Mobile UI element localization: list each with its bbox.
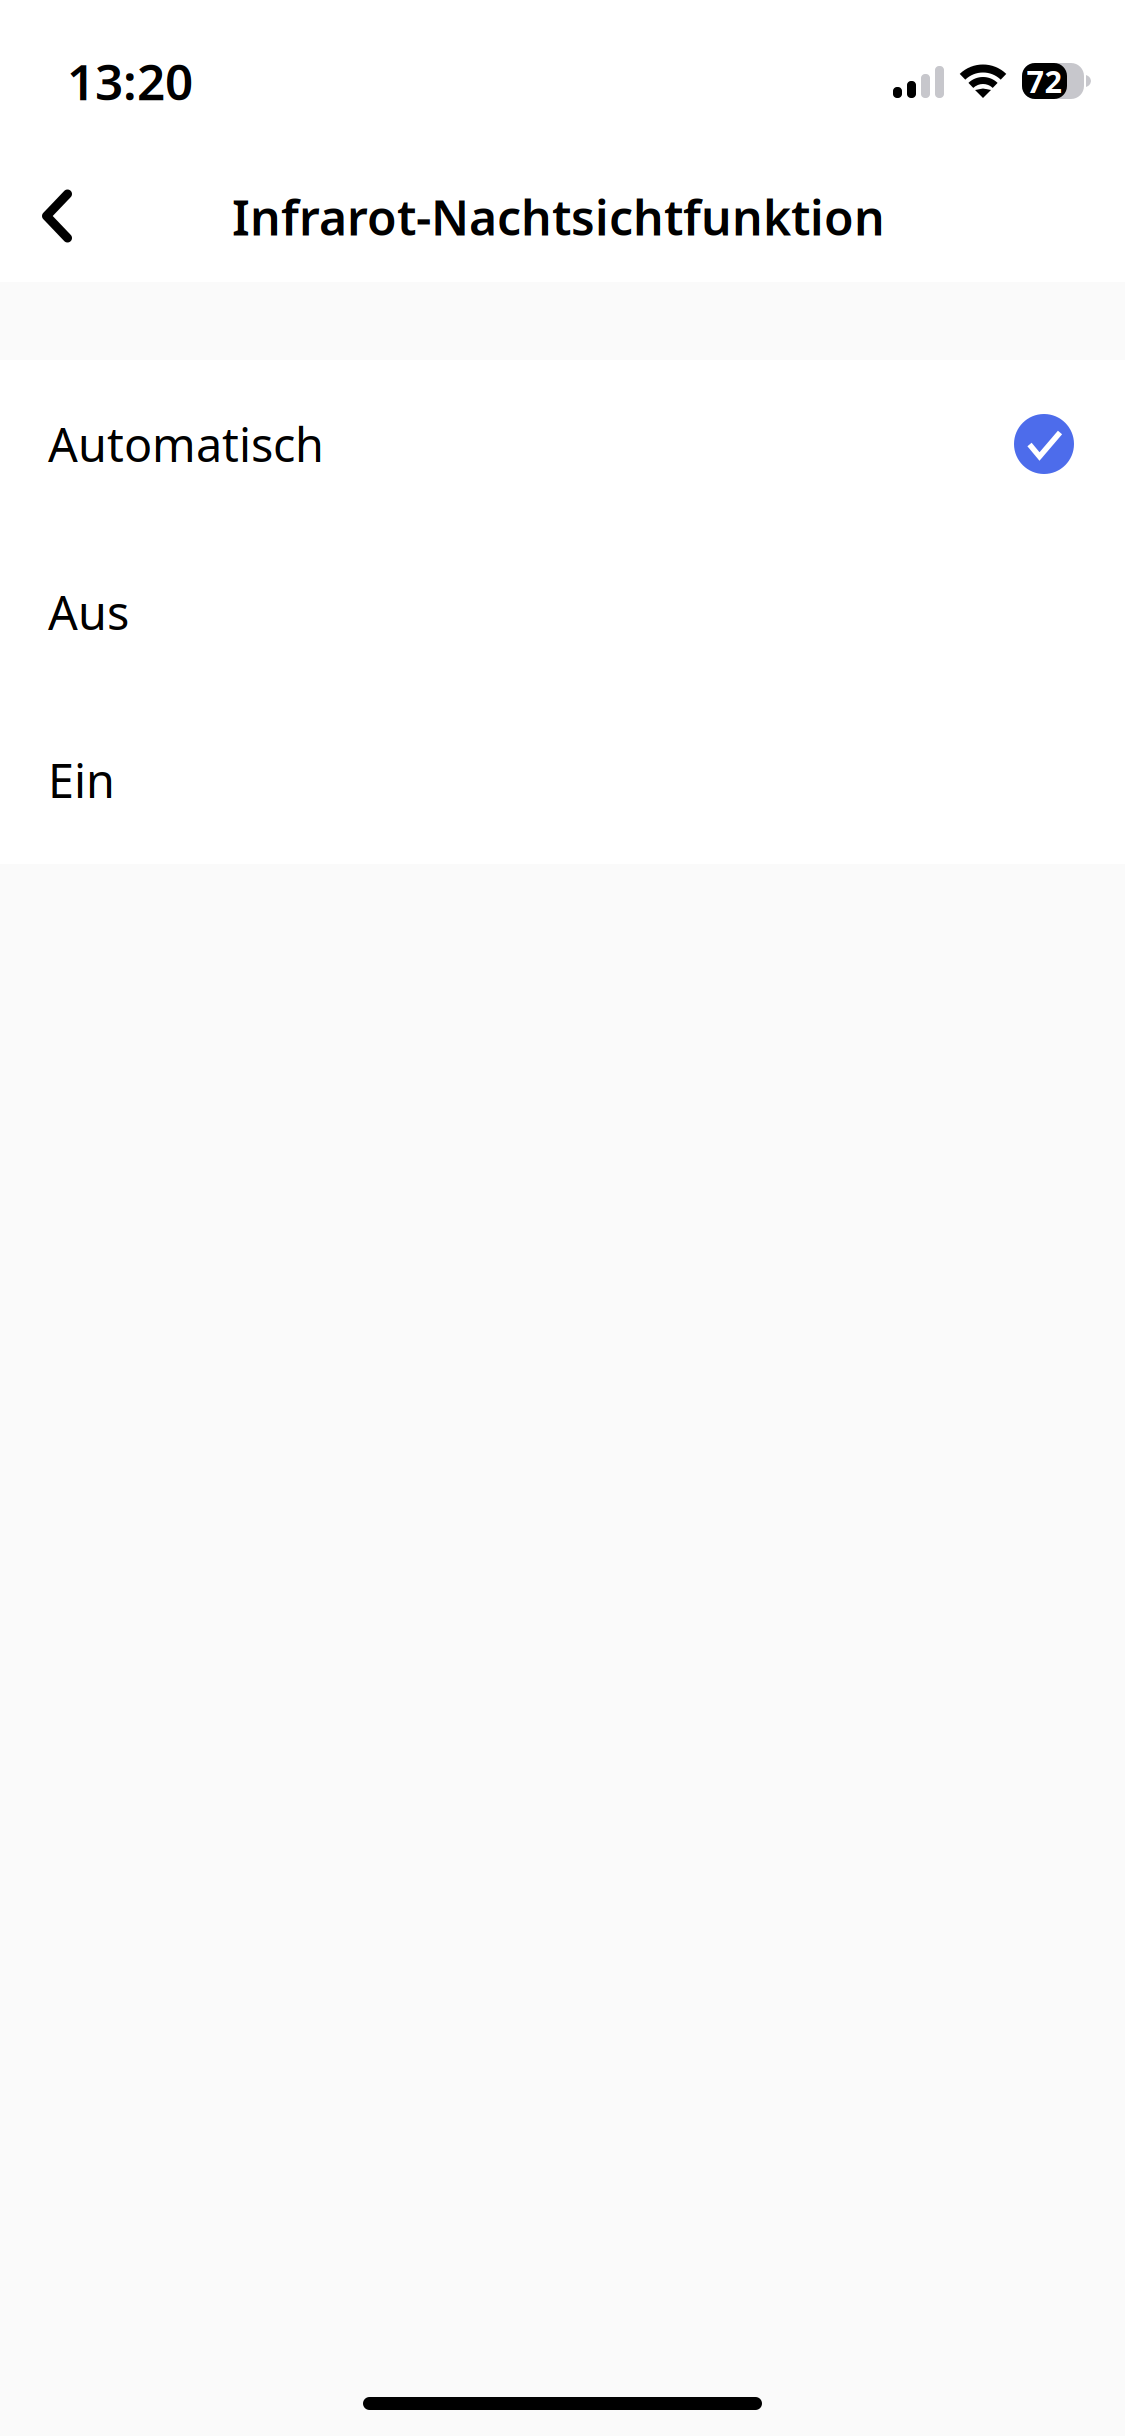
button[interactable]: Ein — [0, 696, 1125, 864]
staticText: Aus — [48, 581, 129, 643]
button[interactable]: Aus — [0, 528, 1125, 696]
button[interactable]: Back — [0, 132, 100, 282]
button[interactable]: Automatisch — [0, 360, 1125, 528]
staticText: Infrarot-Nachtsichtfunktion — [232, 185, 885, 249]
staticText: Ein — [48, 749, 115, 811]
staticText: Automatisch — [48, 413, 324, 475]
staticText: 13:20 — [67, 48, 193, 114]
staticText: 72 — [1026, 61, 1062, 101]
